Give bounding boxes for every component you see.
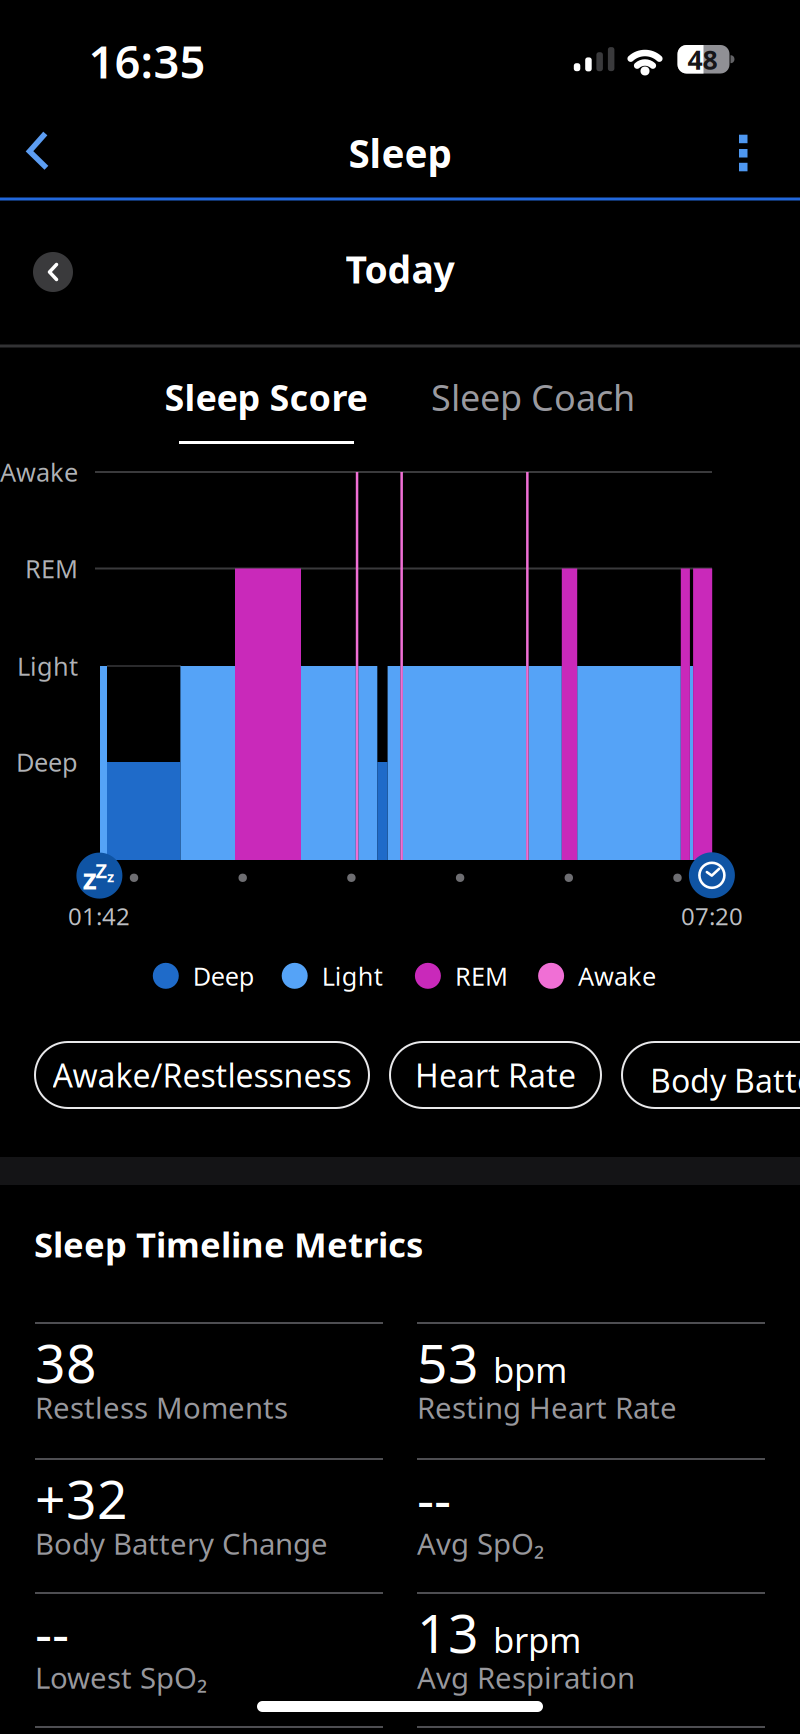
staticText: Light [322, 959, 383, 993]
button[interactable]: Awake/Restlessness [35, 1042, 369, 1108]
staticText: Avg SpO₂ [417, 1524, 544, 1563]
staticText: Light [17, 649, 78, 683]
staticText: 48 [687, 42, 717, 77]
staticText: Lowest SpO₂ [35, 1658, 207, 1697]
staticText: brpm [493, 1617, 581, 1663]
button[interactable]: Heart Rate [390, 1042, 601, 1108]
staticText: -- [417, 1463, 451, 1534]
staticText: Body Battery Change [35, 1524, 328, 1563]
staticText: Awake [0, 455, 78, 489]
staticText: Avg Respiration [417, 1658, 635, 1697]
staticText: REM [25, 552, 78, 585]
staticText: Z [95, 857, 107, 884]
staticText: bpm [493, 1347, 567, 1393]
staticText: Heart Rate [415, 1054, 576, 1096]
staticText: Sleep [348, 127, 451, 179]
staticText: REM [455, 959, 508, 993]
staticText: z [107, 867, 114, 886]
staticText: -- [35, 1597, 69, 1668]
staticText: 13 [417, 1597, 479, 1668]
staticText: Sleep Coach [431, 373, 635, 421]
button[interactable]: Sleep Coach [403, 365, 663, 429]
staticText: Awake [578, 959, 656, 993]
staticText: Resting Heart Rate [417, 1388, 677, 1427]
staticText: Sleep Score [164, 373, 367, 421]
staticText: 16:35 [88, 31, 205, 91]
staticText: 53 [417, 1327, 479, 1398]
staticText: Sleep Timeline Metrics [34, 1221, 423, 1267]
staticText: +32 [35, 1463, 128, 1534]
staticText: Deep [16, 745, 78, 779]
button[interactable]: Body Battery [622, 1042, 800, 1108]
button[interactable]: Sleep Score [136, 365, 396, 429]
staticText: 07:20 [681, 900, 743, 932]
staticText: z [82, 858, 96, 897]
staticText: Restless Moments [35, 1388, 288, 1427]
button[interactable] [33, 252, 73, 292]
staticText: 01:42 [68, 900, 130, 932]
staticText: Deep [193, 959, 255, 993]
staticText: Body Battery [650, 1059, 800, 1101]
staticText: Awake/Restlessness [52, 1054, 351, 1096]
staticText: Today [345, 244, 454, 294]
staticText: 38 [35, 1327, 97, 1398]
